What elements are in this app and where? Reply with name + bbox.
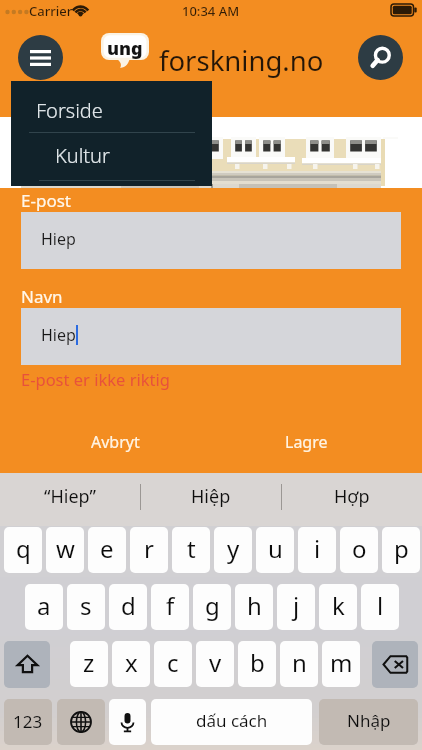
button[interactable]: t xyxy=(172,527,210,573)
staticText: y xyxy=(227,532,240,565)
staticText: b xyxy=(250,646,265,679)
staticText: Navn xyxy=(21,285,63,308)
button[interactable]: Shift xyxy=(4,641,50,688)
staticText: Hiep xyxy=(41,228,76,250)
button[interactable]: r xyxy=(130,527,168,573)
staticText: z xyxy=(83,646,95,679)
button[interactable]: g xyxy=(193,584,231,630)
button[interactable]: w xyxy=(46,527,84,573)
staticText: h xyxy=(247,589,262,622)
button[interactable]: d xyxy=(109,584,147,630)
staticText: l xyxy=(377,589,384,622)
button[interactable]: dấu cách xyxy=(151,699,312,745)
staticText: E-post er ikke riktig xyxy=(21,368,170,390)
button[interactable]: Hiep xyxy=(21,308,401,365)
button[interactable]: l xyxy=(361,584,399,630)
button[interactable]: Dictation xyxy=(109,699,146,745)
staticText: v xyxy=(209,646,222,679)
button[interactable]: Search xyxy=(358,35,403,80)
button[interactable]: Nhập xyxy=(319,699,418,745)
button[interactable]: y xyxy=(214,527,252,573)
button[interactable]: u xyxy=(256,527,294,573)
button[interactable]: k xyxy=(319,584,357,630)
button[interactable]: i xyxy=(298,527,336,573)
staticText: a xyxy=(37,589,51,622)
staticText: dấu cách xyxy=(196,709,268,732)
button[interactable]: j xyxy=(277,584,315,630)
staticText: Avbryt xyxy=(91,431,140,453)
staticText: forskning.no xyxy=(159,42,324,79)
button[interactable]: Menu xyxy=(18,35,63,80)
staticText: p xyxy=(394,532,409,565)
staticText: Hiệp xyxy=(191,484,231,509)
button[interactable]: c xyxy=(154,641,192,687)
staticText: k xyxy=(332,589,345,622)
staticText: ung xyxy=(107,36,143,61)
staticText: g xyxy=(205,589,220,622)
staticText: m xyxy=(330,646,353,679)
button[interactable]: h xyxy=(235,584,273,630)
staticText: Forside xyxy=(36,97,103,124)
staticText: “Hiep” xyxy=(44,484,96,509)
staticText: Hợp xyxy=(334,484,370,509)
button[interactable]: p xyxy=(382,527,420,573)
staticText: f xyxy=(166,589,175,622)
button[interactable]: z xyxy=(70,641,108,687)
button[interactable]: v xyxy=(196,641,234,687)
staticText: o xyxy=(352,532,367,565)
button[interactable]: s xyxy=(67,584,105,630)
staticText: i xyxy=(314,532,321,565)
staticText: q xyxy=(16,532,31,565)
button[interactable]: e xyxy=(88,527,126,573)
staticText: x xyxy=(125,646,138,679)
button[interactable]: Kultur xyxy=(11,133,212,181)
button[interactable]: o xyxy=(340,527,378,573)
staticText: j xyxy=(293,589,300,622)
button[interactable]: Forside xyxy=(11,81,212,132)
button[interactable]: Hiệp xyxy=(140,473,281,526)
button[interactable]: a xyxy=(25,584,63,630)
staticText: Hiep xyxy=(41,324,76,346)
button[interactable]: f xyxy=(151,584,189,630)
staticText: Nhập xyxy=(347,709,391,732)
staticText: Lagre xyxy=(285,431,328,453)
button[interactable]: m xyxy=(322,641,360,687)
button[interactable]: b xyxy=(238,641,276,687)
button[interactable]: Hiep xyxy=(21,212,401,269)
button[interactable]: q xyxy=(4,527,42,573)
button[interactable]: Change keyboard xyxy=(57,699,105,745)
staticText: Kultur xyxy=(55,142,110,169)
staticText: u xyxy=(268,532,283,565)
staticText: w xyxy=(56,532,75,565)
staticText: E-post xyxy=(21,189,71,212)
staticText: s xyxy=(80,589,92,622)
staticText: d xyxy=(121,589,136,622)
button[interactable]: x xyxy=(112,641,150,687)
button[interactable]: Lagre xyxy=(254,426,359,458)
staticText: e xyxy=(100,532,114,565)
button[interactable]: Hợp xyxy=(281,473,422,526)
button[interactable]: Avbryt xyxy=(63,426,168,458)
staticText: 10:34 AM xyxy=(182,2,240,20)
staticText: t xyxy=(187,532,196,565)
staticText: c xyxy=(167,646,179,679)
button[interactable]: Backspace xyxy=(372,641,418,688)
staticText: n xyxy=(292,646,307,679)
staticText: 123 xyxy=(13,710,43,733)
button[interactable]: “Hiep” xyxy=(0,473,140,526)
button[interactable]: n xyxy=(280,641,318,687)
staticText: Carrier xyxy=(29,2,73,20)
staticText: r xyxy=(144,532,154,565)
button[interactable]: 123 xyxy=(4,699,52,745)
